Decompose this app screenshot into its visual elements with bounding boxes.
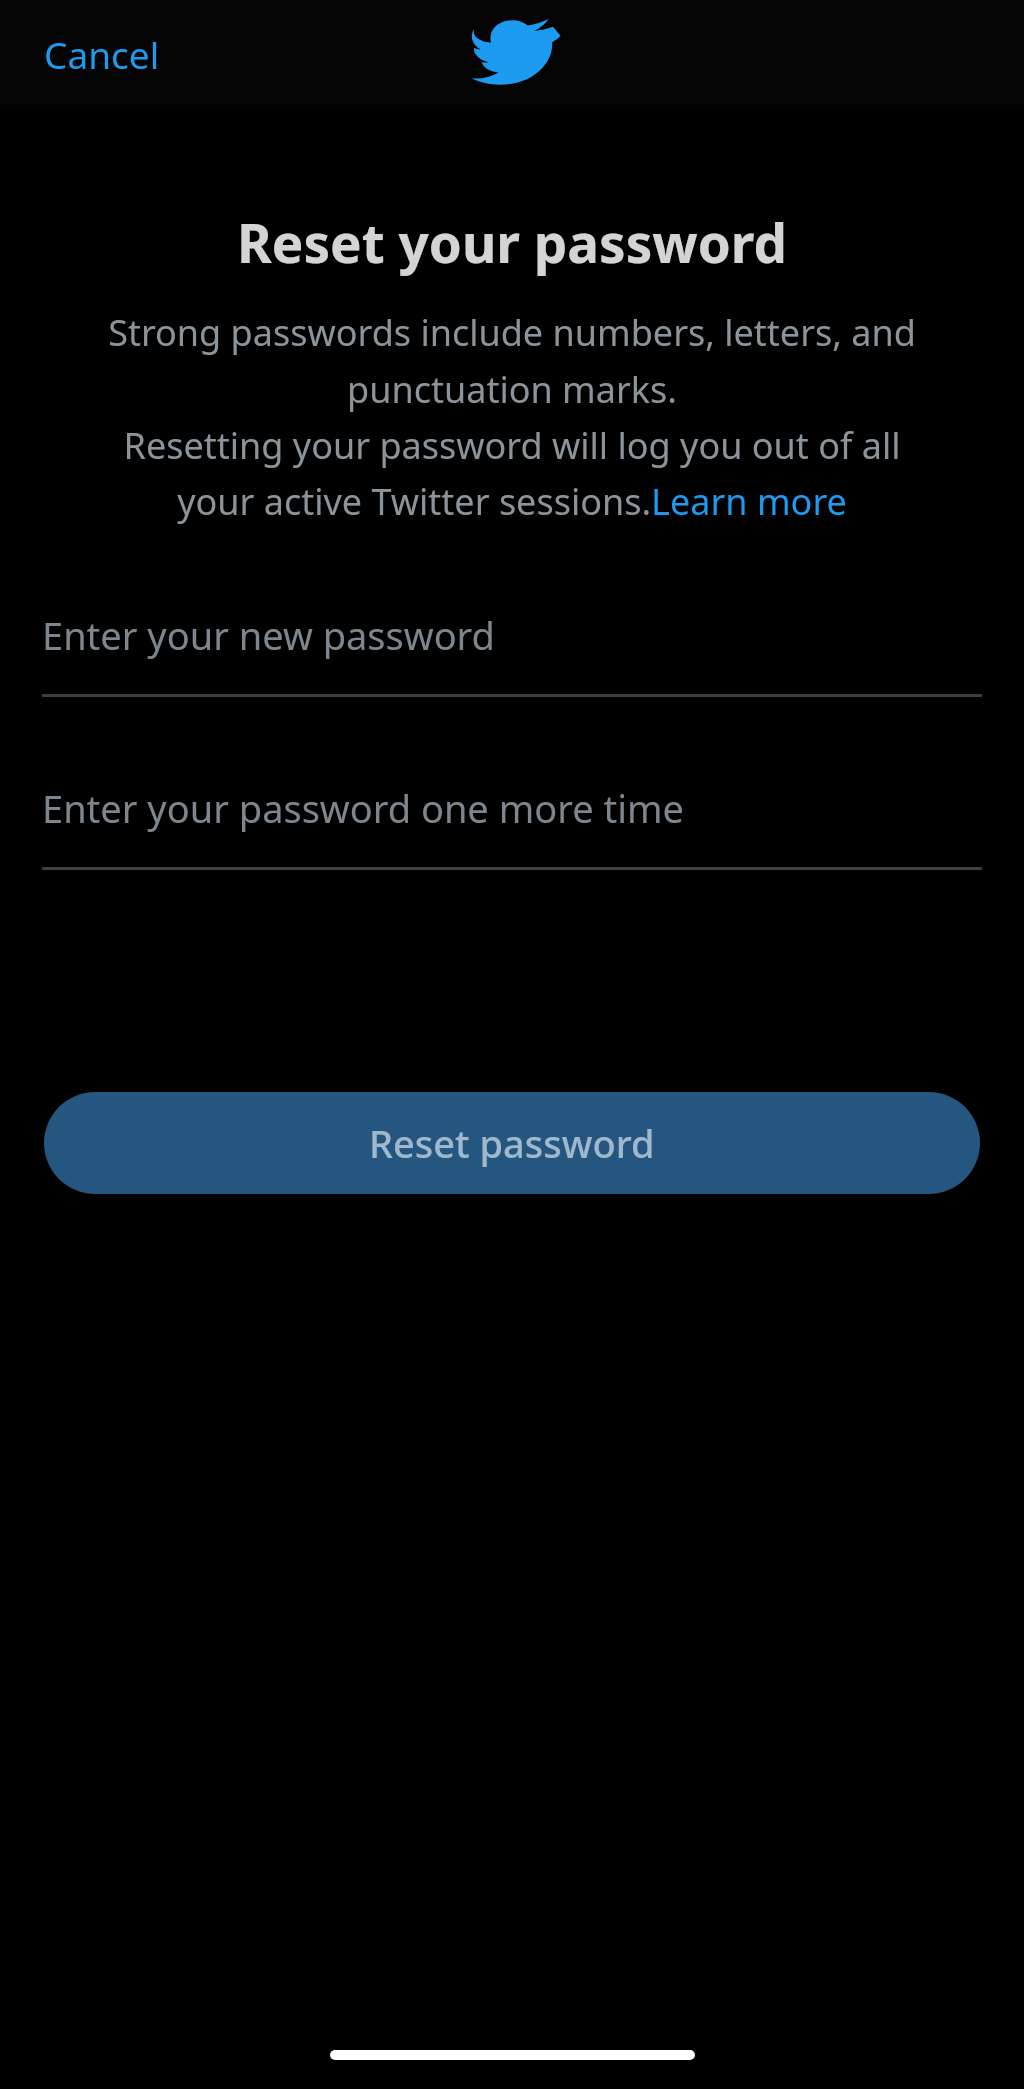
- staticText: Enter your password one more time: [42, 782, 684, 834]
- staticText: Reset your password: [0, 206, 1024, 278]
- staticText: Cancel: [44, 29, 160, 79]
- button[interactable]: Enter your password one more time: [42, 775, 982, 870]
- staticText: Strong passwords include numbers, letter…: [96, 308, 928, 526]
- button[interactable]: Cancel: [30, 17, 174, 91]
- staticText: Reset password: [369, 1117, 655, 1169]
- button[interactable]: Enter your new password: [42, 602, 982, 697]
- staticText: Enter your new password: [42, 609, 495, 661]
- other: Twitter: [471, 19, 553, 85]
- button[interactable]: Reset password: [44, 1092, 980, 1194]
